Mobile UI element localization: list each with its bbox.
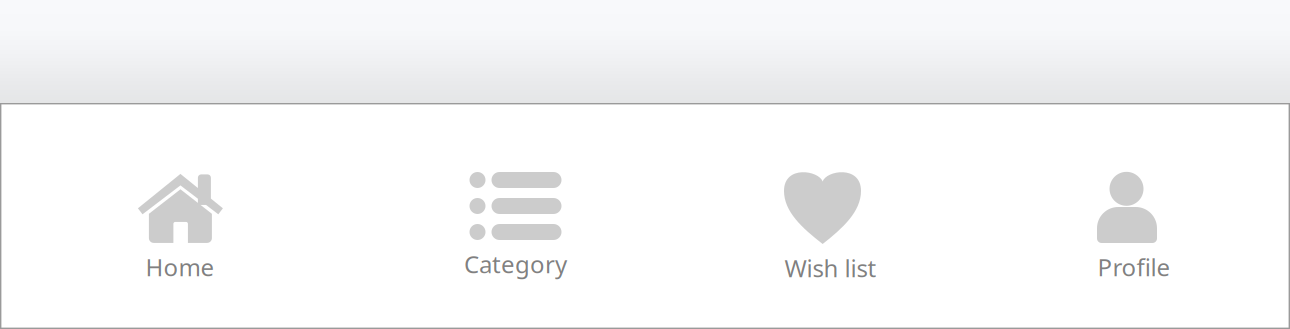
button[interactable]: Wish list [671, 103, 990, 329]
button[interactable]: Home [0, 103, 360, 329]
button[interactable]: Profile [990, 103, 1278, 329]
staticText: Wish list [784, 252, 876, 284]
button[interactable]: Category [360, 103, 671, 329]
staticText: Category [464, 248, 567, 280]
staticText: Profile [1097, 251, 1170, 283]
staticText: Home [145, 251, 214, 283]
